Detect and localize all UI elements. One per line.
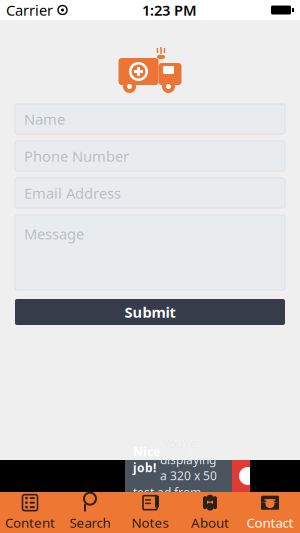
staticText: Carrier [6, 0, 53, 20]
staticText: Email Address [24, 183, 121, 203]
staticText: Notes [131, 514, 168, 531]
staticText: Search [69, 514, 110, 531]
button[interactable]: Content [0, 492, 60, 533]
staticText: Phone Number [24, 146, 129, 166]
button[interactable]: Contact [240, 492, 300, 533]
button[interactable]: Search [60, 492, 120, 533]
button[interactable]: Submit [15, 299, 285, 325]
staticText: 1:23 PM [142, 0, 197, 20]
staticText: About [191, 514, 229, 531]
button[interactable]: Notes [120, 492, 180, 533]
staticText: You're displaying a 320 x 50 [160, 436, 217, 483]
staticText: Contact [246, 514, 293, 531]
staticText: Submit [124, 302, 175, 322]
staticText: Content [5, 514, 55, 531]
button[interactable]: About [180, 492, 240, 533]
staticText: test ad from AdMob. [133, 484, 201, 516]
staticText: Message [24, 224, 84, 243]
staticText: Name [24, 109, 65, 129]
staticText: Nice job! [133, 444, 160, 475]
